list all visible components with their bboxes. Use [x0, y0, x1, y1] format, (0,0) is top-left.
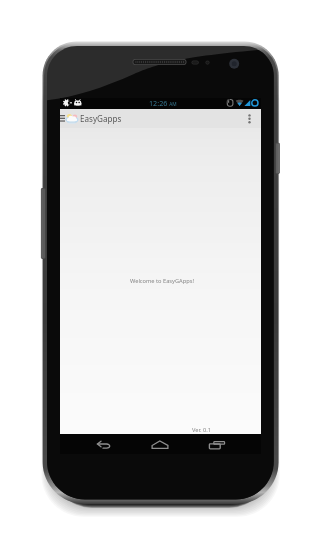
button[interactable]: Back	[86, 434, 122, 454]
button[interactable]: Recent apps	[199, 434, 235, 454]
button[interactable]: Home	[142, 434, 178, 454]
staticText: Welcome to EasyGApps!	[130, 277, 195, 285]
button[interactable]: Open navigation drawer	[60, 109, 65, 128]
staticText: EasyGapps	[80, 113, 122, 124]
staticText: 12:26	[149, 98, 168, 108]
staticText: AM	[168, 101, 177, 108]
button[interactable]: More options	[242, 109, 256, 128]
staticText: Ver. 0.1	[192, 426, 211, 434]
